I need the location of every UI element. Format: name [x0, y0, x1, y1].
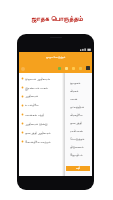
staticText: கிரகம் [70, 90, 79, 93]
button[interactable]: பொருத்தம் [70, 135, 92, 143]
staticText: பொருத்தம் [70, 138, 85, 141]
button[interactable]: பலன் [70, 95, 92, 103]
staticText: உடல்நிலை [25, 104, 39, 107]
staticText: சரி [76, 167, 80, 170]
button[interactable]: பலன்கள் பற்றி [19, 110, 62, 119]
staticText: பலன்கள் பற்றி [25, 113, 45, 117]
staticText: அதிகாரம் மூன்று [25, 122, 48, 126]
button[interactable]: திருமணம் [70, 143, 92, 151]
staticText: திருமணம் [70, 146, 84, 149]
staticText: ஜோதிடம் [70, 154, 83, 157]
staticText: இரண்டாம் பாகம் [25, 86, 48, 90]
staticText: முதலாம் அதிகாரம் [25, 77, 50, 81]
button[interactable]: Action 1 [57, 66, 61, 70]
button[interactable]: முதலாம் அதிகாரம் [19, 74, 62, 83]
button[interactable]: Profile [85, 65, 90, 70]
staticText: தசாபுத்தி அதிகாரம் [25, 131, 51, 135]
staticText: தசாபுத்தி [70, 122, 82, 125]
staticText: நட்சத்திரம் [70, 106, 85, 109]
button[interactable]: அதிகாரம் [19, 92, 62, 101]
staticText: ஜாதக பொருத்தம் [46, 55, 66, 59]
button[interactable]: நட்சத்திரம் [70, 103, 92, 111]
button[interactable]: ஜாதக பொருத்தம் [19, 52, 92, 61]
staticText: ஜாதக பொருத்தம் [31, 14, 83, 24]
staticText: கிரகநிலை [70, 114, 83, 117]
button[interactable]: உடல்நிலை [19, 101, 62, 110]
button[interactable]: கோள்நிலை மாற்றம் [19, 137, 62, 146]
button[interactable]: அதிகாரம் மூன்று [19, 119, 62, 128]
staticText: பலன் [70, 98, 78, 101]
button[interactable]: தசாபுத்தி [70, 119, 92, 127]
button[interactable]: சரி [66, 166, 90, 171]
button[interactable]: Navigate up [20, 66, 25, 71]
staticText: அதிகாரம் [25, 95, 39, 98]
button[interactable]: இரண்டாம் பாகம் [19, 83, 62, 92]
button[interactable]: கிரகம் [70, 87, 92, 95]
button[interactable]: Action 4 [78, 66, 82, 70]
button[interactable]: ஜாதகம் [70, 79, 92, 87]
button[interactable]: ராசிபலன் [70, 127, 92, 135]
staticText: ஜாதகம் [70, 82, 81, 85]
button[interactable]: கிரகநிலை [70, 111, 92, 119]
button[interactable]: தசாபுத்தி அதிகாரம் [19, 128, 62, 137]
staticText: கோள்நிலை மாற்றம் [25, 140, 51, 144]
button[interactable]: Action 2 [64, 66, 68, 70]
staticText: ராசிபலன் [70, 130, 83, 133]
button[interactable]: ஜோதிடம் [70, 151, 92, 159]
button[interactable]: Action 3 [71, 66, 75, 70]
